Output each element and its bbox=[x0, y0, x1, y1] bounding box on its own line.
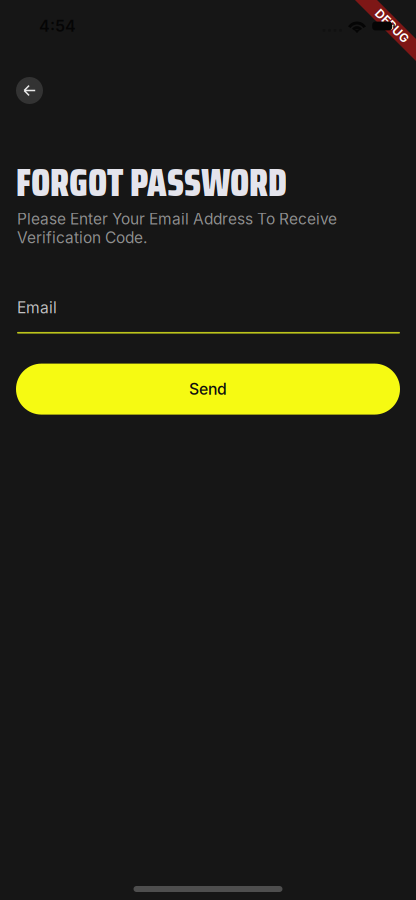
staticText: FORGOT PASSWORD bbox=[16, 153, 287, 213]
staticText: DEBUG bbox=[371, 19, 413, 33]
staticText: Please Enter Your Email Address To Recei… bbox=[17, 210, 337, 247]
staticText: Email bbox=[17, 298, 57, 317]
button[interactable]: Back bbox=[16, 77, 43, 104]
staticText: 4:54 bbox=[39, 16, 76, 36]
button[interactable]: Send bbox=[16, 364, 400, 415]
staticText: Send bbox=[189, 380, 227, 399]
